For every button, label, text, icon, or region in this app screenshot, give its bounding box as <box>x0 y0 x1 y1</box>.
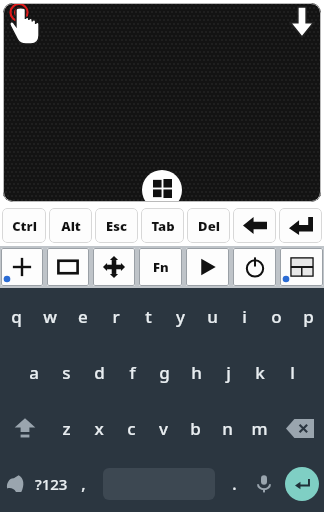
button[interactable]: Move <box>93 248 135 286</box>
staticText: l <box>290 361 295 384</box>
button[interactable]: z <box>50 400 83 456</box>
staticText: h <box>191 361 202 384</box>
staticText: , <box>81 473 86 495</box>
button[interactable]: Enter <box>279 208 322 243</box>
button[interactable]: Alt <box>49 208 92 243</box>
staticText: o <box>271 305 282 328</box>
button[interactable]: k <box>244 344 276 400</box>
staticText: n <box>222 417 233 440</box>
staticText: Del <box>198 217 220 235</box>
button[interactable]: g <box>148 344 180 400</box>
staticText: y <box>176 305 185 328</box>
staticText: Esc <box>106 217 127 235</box>
staticText: s <box>62 361 71 384</box>
button[interactable]: Power <box>233 248 276 286</box>
button[interactable]: m <box>243 400 275 456</box>
button[interactable]: f <box>116 344 148 400</box>
staticText: Ctrl <box>12 217 37 235</box>
button[interactable]: Voice input <box>248 456 280 512</box>
button[interactable]: e <box>66 288 99 344</box>
staticText: u <box>207 305 218 328</box>
button[interactable]: j <box>212 344 244 400</box>
button[interactable]: a <box>17 344 50 400</box>
button[interactable]: i <box>228 288 260 344</box>
staticText: b <box>190 417 201 440</box>
button[interactable]: Del <box>187 208 230 243</box>
button[interactable]: Tab <box>141 208 184 243</box>
button[interactable]: d <box>83 344 116 400</box>
button[interactable]: . <box>221 456 248 512</box>
staticText: f <box>129 361 136 384</box>
staticText: k <box>255 361 265 384</box>
staticText: ?123 <box>35 474 68 494</box>
staticText: g <box>159 361 170 384</box>
button[interactable]: w <box>33 288 66 344</box>
staticText: v <box>159 417 168 440</box>
staticText: m <box>251 417 268 440</box>
staticText: j <box>226 361 231 384</box>
button[interactable]: Shift <box>0 400 50 456</box>
staticText: q <box>11 305 22 328</box>
button[interactable]: Enter <box>285 467 319 501</box>
staticText: p <box>303 305 314 328</box>
button[interactable]: Add <box>1 248 43 286</box>
button[interactable]: Window <box>47 248 89 286</box>
staticText: i <box>242 305 247 328</box>
button[interactable]: v <box>147 400 179 456</box>
staticText: d <box>94 361 105 384</box>
button[interactable]: l <box>276 344 308 400</box>
button[interactable]: Backspace <box>275 400 324 456</box>
button[interactable]: q <box>0 288 33 344</box>
button[interactable]: b <box>179 400 211 456</box>
staticText: w <box>43 305 57 328</box>
button[interactable]: Split <box>280 248 323 286</box>
button[interactable]: Backspace <box>233 208 276 243</box>
button[interactable]: , <box>70 456 97 512</box>
staticText: t <box>145 305 152 328</box>
button[interactable]: Start menu <box>142 170 182 202</box>
staticText: c <box>127 417 136 440</box>
staticText: e <box>78 305 88 328</box>
button[interactable]: n <box>211 400 243 456</box>
button[interactable]: u <box>196 288 228 344</box>
button[interactable]: Handwriting <box>0 456 32 512</box>
staticText: a <box>29 361 39 384</box>
button[interactable]: c <box>115 400 147 456</box>
staticText: r <box>112 305 120 328</box>
button[interactable]: Play <box>186 248 229 286</box>
button[interactable]: p <box>292 288 324 344</box>
button[interactable]: Fn <box>139 248 182 286</box>
staticText: z <box>62 417 71 440</box>
button[interactable]: t <box>132 288 164 344</box>
staticText: Fn <box>153 258 169 276</box>
staticText: Tab <box>151 217 175 235</box>
staticText: Alt <box>61 217 81 235</box>
button[interactable]: o <box>260 288 292 344</box>
button[interactable]: h <box>180 344 212 400</box>
button[interactable]: Touchpad <box>3 3 321 202</box>
button[interactable]: Ctrl <box>2 208 46 243</box>
staticText: . <box>232 473 237 495</box>
button[interactable]: x <box>83 400 115 456</box>
button[interactable]: y <box>164 288 196 344</box>
staticText: x <box>94 417 104 440</box>
button[interactable]: s <box>50 344 83 400</box>
button[interactable]: ?123 <box>32 456 70 512</box>
button[interactable]: Esc <box>95 208 138 243</box>
button[interactable]: r <box>99 288 132 344</box>
